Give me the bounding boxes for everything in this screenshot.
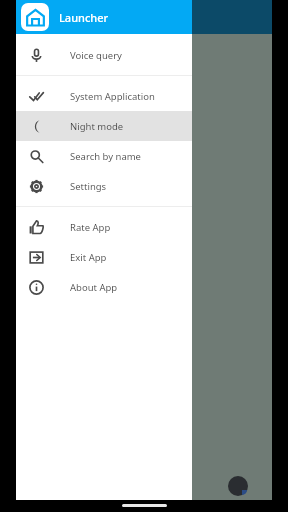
- button[interactable]: Data Transfer Tool: [16, 352, 272, 405]
- button[interactable]: Settings: [16, 171, 192, 201]
- button[interactable]: Search by name: [16, 141, 192, 171]
- staticText: System Application: [70, 90, 155, 103]
- button[interactable]: Carrier App Logging: [16, 193, 272, 246]
- staticText: Launcher: [59, 10, 109, 25]
- staticText: Android System A...: [105, 123, 183, 135]
- button[interactable]: Android Services L...: [16, 34, 272, 87]
- staticText: Android Services L...: [104, 70, 184, 82]
- button[interactable]: System Application: [16, 81, 192, 111]
- button[interactable]: Cloud Print: [16, 299, 272, 352]
- button[interactable]: Carrier Setup: [16, 246, 272, 299]
- button[interactable]: Launcher: [16, 0, 192, 34]
- staticText: About App: [70, 281, 118, 294]
- staticText: Exit App: [70, 251, 107, 264]
- staticText: Carrier App Logging: [104, 229, 185, 241]
- button[interactable]: Rate App: [16, 212, 192, 242]
- button[interactable]: Android System A...: [16, 87, 272, 140]
- button[interactable]: Calendar: [16, 140, 272, 193]
- staticText: Search by name: [70, 150, 141, 163]
- staticText: Settings: [70, 180, 107, 193]
- button[interactable]: Exit App: [16, 242, 192, 272]
- button[interactable]: Voice query: [16, 40, 192, 70]
- staticText: Voice query: [70, 49, 122, 62]
- staticText: Rate App: [70, 221, 111, 234]
- button[interactable]: About App: [16, 272, 192, 302]
- staticText: Night mode: [70, 120, 124, 133]
- button[interactable]: Device Setup: [16, 405, 272, 458]
- button[interactable]: Night mode: [16, 111, 192, 141]
